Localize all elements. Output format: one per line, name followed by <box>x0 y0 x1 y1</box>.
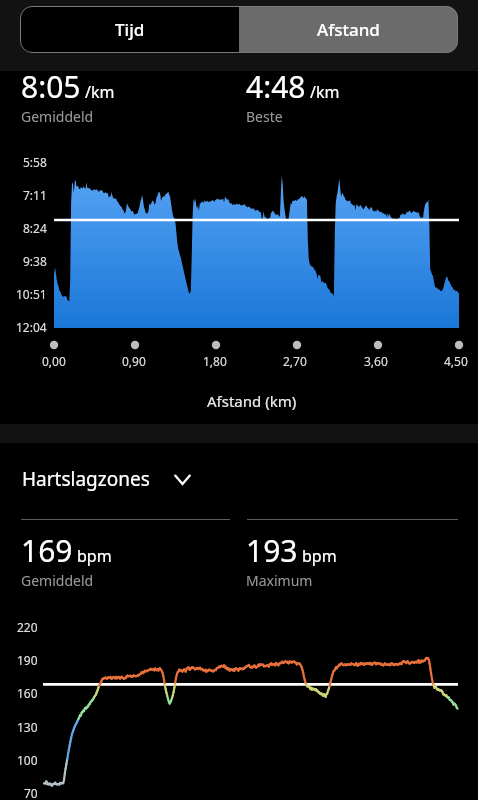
other: Uitvouwen <box>174 469 191 489</box>
staticText: 1,80 <box>203 353 227 369</box>
staticText: 3,60 <box>364 353 388 369</box>
staticText: 169 <box>21 530 73 571</box>
staticText: 5:58 <box>23 154 47 170</box>
staticText: 12:04 <box>16 319 47 335</box>
staticText: /km <box>85 81 115 103</box>
staticText: 2,70 <box>283 353 307 369</box>
staticText: 8:05 <box>21 66 81 107</box>
staticText: bpm <box>302 545 337 567</box>
staticText: 9:38 <box>23 253 47 269</box>
staticText: 70 <box>24 785 38 800</box>
staticText: bpm <box>77 545 112 567</box>
staticText: Maximum <box>246 571 313 590</box>
staticText: 10:51 <box>16 286 47 302</box>
staticText: Tijd <box>115 18 145 41</box>
staticText: 0,00 <box>42 353 66 369</box>
staticText: 160 <box>17 685 38 701</box>
button[interactable]: Hartslagzones <box>22 466 191 492</box>
staticText: /km <box>310 81 340 103</box>
button[interactable]: Tijd <box>20 6 239 53</box>
staticText: 190 <box>17 652 38 668</box>
staticText: Hartslagzones <box>22 466 150 492</box>
staticText: Gemiddeld <box>21 571 94 590</box>
staticText: 4:48 <box>246 66 306 107</box>
staticText: 100 <box>17 752 38 768</box>
staticText: 0,90 <box>122 353 146 369</box>
button[interactable]: Afstand <box>239 6 458 53</box>
staticText: Afstand <box>317 18 380 41</box>
staticText: 193 <box>246 530 298 571</box>
staticText: 7:11 <box>23 187 47 203</box>
staticText: 130 <box>17 719 38 735</box>
staticText: 220 <box>17 619 38 635</box>
staticText: Afstand (km) <box>207 391 297 411</box>
staticText: 4,50 <box>444 353 468 369</box>
staticText: 8:24 <box>23 220 47 236</box>
staticText: Gemiddeld <box>21 107 94 126</box>
staticText: Beste <box>246 107 283 126</box>
